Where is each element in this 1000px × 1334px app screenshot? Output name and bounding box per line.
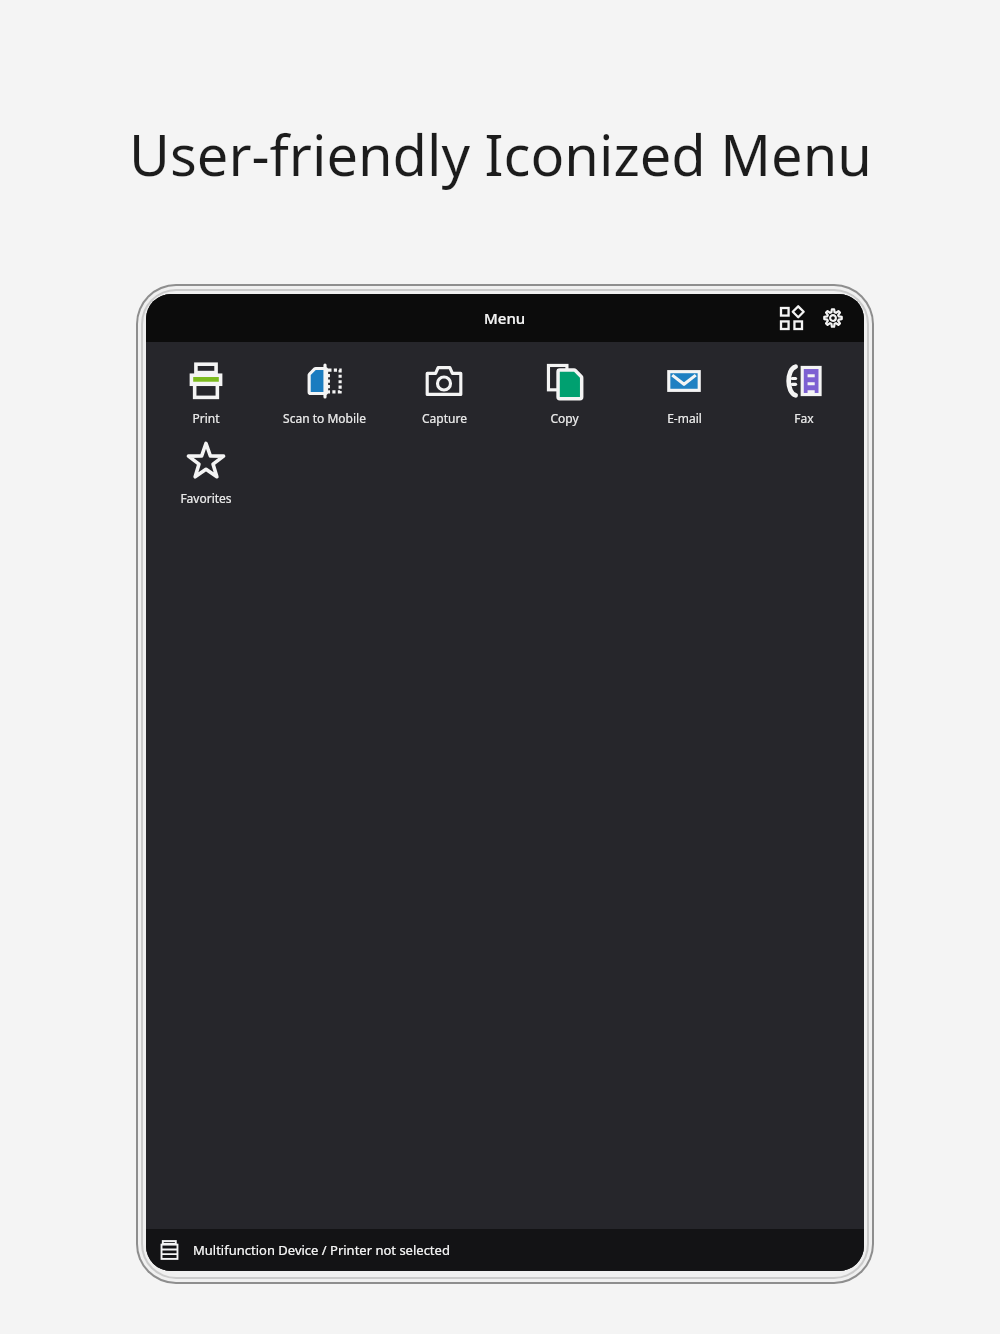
button[interactable]: E-mail: [624, 360, 744, 426]
button[interactable]: Layout view: [770, 297, 812, 339]
staticText: E-mail: [667, 410, 702, 426]
staticText: Print: [192, 410, 220, 426]
staticText: Copy: [550, 410, 579, 426]
button[interactable]: Scan to Mobile: [265, 360, 384, 426]
button[interactable]: Favorites: [146, 440, 266, 506]
button[interactable]: Capture: [384, 360, 504, 426]
staticText: Menu: [484, 308, 526, 328]
staticText: Multifunction Device / Printer not selec…: [193, 1241, 450, 1259]
button[interactable]: Copy: [504, 360, 624, 426]
button[interactable]: Print: [146, 360, 265, 426]
staticText: Favorites: [180, 490, 232, 506]
staticText: Scan to Mobile: [283, 410, 366, 426]
staticText: Fax: [794, 410, 814, 426]
button[interactable]: Settings: [812, 297, 854, 339]
button[interactable]: Fax: [744, 360, 864, 426]
staticText: User-friendly Iconized Menu: [129, 116, 872, 192]
staticText: Capture: [422, 410, 467, 426]
button[interactable]: Multifunction Device / Printer not selec…: [146, 1229, 864, 1271]
